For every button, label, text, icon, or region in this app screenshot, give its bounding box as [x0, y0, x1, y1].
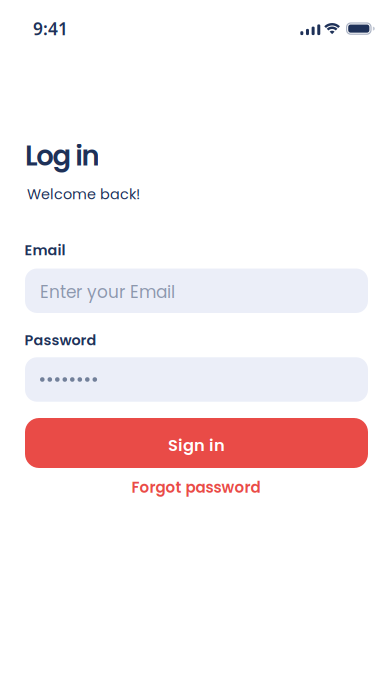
staticText: Sign in [168, 434, 225, 457]
staticText: Enter your Email [40, 280, 175, 304]
button[interactable]: Enter your Email [25, 268, 368, 313]
staticText: Email [24, 240, 65, 260]
staticText: 9:41 [33, 17, 68, 40]
staticText: Welcome back! [27, 184, 140, 204]
button[interactable]: Password [25, 357, 368, 402]
staticText: Log in [25, 137, 99, 175]
button[interactable]: Sign in [25, 418, 368, 468]
staticText: Forgot password [131, 477, 260, 498]
button[interactable]: Forgot password [131, 477, 260, 498]
staticText: Password [24, 330, 96, 350]
